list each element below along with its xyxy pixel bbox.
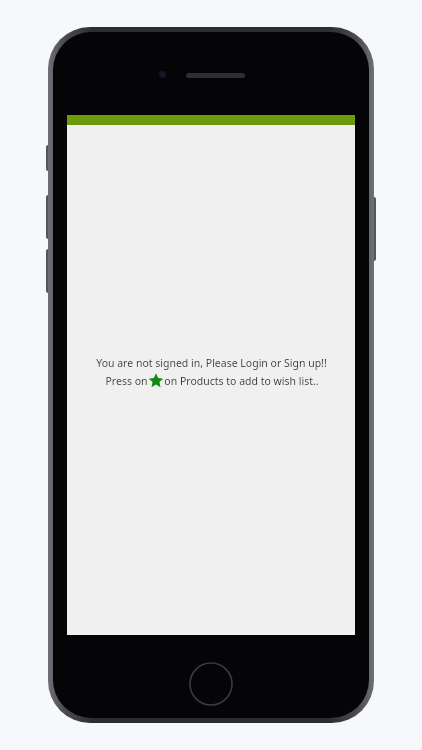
staticText: Press on <box>105 374 148 388</box>
staticText: on Products to add to wish list.. <box>164 374 319 388</box>
staticText: You are not signed in, Please Login or S… <box>96 356 327 370</box>
other: Home <box>189 662 233 706</box>
